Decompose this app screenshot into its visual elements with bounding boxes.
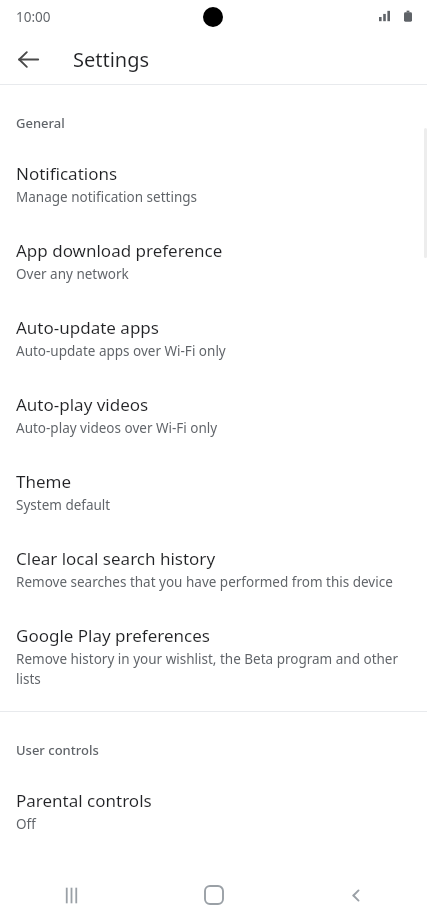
staticText: Clear local search history [16,547,216,570]
staticText: Off [16,815,36,833]
staticText: Auto-update apps [16,316,159,339]
staticText: System default [16,496,111,514]
staticText: Remove history in your wishlist, the Bet… [16,650,405,688]
staticText: Auto-update apps over Wi-Fi only [16,342,226,360]
staticText: Google Play preferences [16,624,210,647]
button[interactable]: Auto-update apps [0,285,427,362]
staticText: 10:00 [16,8,51,26]
button[interactable]: Notifications [0,132,427,208]
staticText: Remove searches that you have performed … [16,573,393,591]
button[interactable]: Back [8,39,48,79]
button[interactable]: Auto-play videos [0,362,427,439]
button[interactable]: Clear local search history [0,516,427,593]
staticText: Auto-play videos [16,393,149,416]
staticText: Parental controls [16,789,152,812]
staticText: App download preference [16,239,223,262]
button[interactable]: Recent apps [0,874,143,916]
button[interactable]: Home [143,874,285,916]
staticText: Over any network [16,265,129,283]
staticText: User controls [16,741,99,759]
staticText: Theme [16,470,72,493]
staticText: Manage notification settings [16,188,198,206]
button[interactable]: Google Play preferences [0,593,427,690]
button[interactable]: Parental controls [0,759,427,835]
button[interactable]: Theme [0,439,427,516]
button[interactable]: App download preference [0,208,427,285]
staticText: Auto-play videos over Wi-Fi only [16,419,218,437]
staticText: Notifications [16,162,118,185]
staticText: Settings [73,46,150,73]
staticText: General [16,114,65,132]
button[interactable]: Back [285,874,427,916]
